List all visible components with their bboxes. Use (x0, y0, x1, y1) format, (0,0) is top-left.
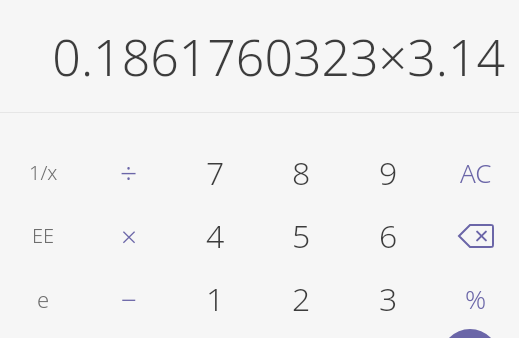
staticText: 8 (292, 151, 311, 195)
staticText: 2 (292, 277, 311, 321)
staticText: 4 (206, 214, 225, 258)
staticText: 7 (206, 151, 225, 195)
staticText: 1/x (29, 159, 58, 186)
button[interactable]: EE (0, 204, 86, 267)
button[interactable]: − (86, 267, 172, 330)
button[interactable]: Equals (441, 329, 499, 338)
button[interactable]: 2 (258, 267, 345, 330)
button[interactable]: Backspace (432, 204, 519, 267)
button[interactable]: % (432, 267, 519, 330)
staticText: 9 (379, 151, 398, 195)
staticText: − (121, 280, 137, 318)
staticText: 6 (379, 214, 398, 258)
button[interactable]: AC (432, 141, 519, 204)
staticText: EE (32, 222, 55, 249)
staticText: % (465, 281, 487, 316)
staticText: AC (460, 155, 492, 190)
button[interactable]: 1/x (0, 141, 86, 204)
staticText: 1 (206, 277, 225, 321)
button[interactable]: 6 (345, 204, 432, 267)
button[interactable]: 4 (172, 204, 258, 267)
staticText: 0.1861760323×3.14 (52, 23, 505, 91)
button[interactable]: 1 (172, 267, 258, 330)
button[interactable]: e (0, 267, 86, 330)
button[interactable]: 3 (345, 267, 432, 330)
button[interactable]: 9 (345, 141, 432, 204)
staticText: e (37, 284, 50, 314)
button[interactable]: 7 (172, 141, 258, 204)
staticText: 3 (379, 277, 398, 321)
staticText: 5 (292, 214, 311, 258)
button[interactable]: × (86, 204, 172, 267)
staticText: ÷ (120, 152, 138, 193)
button[interactable]: 8 (258, 141, 345, 204)
staticText: × (121, 217, 137, 255)
button[interactable]: ÷ (86, 141, 172, 204)
button[interactable]: 5 (258, 204, 345, 267)
